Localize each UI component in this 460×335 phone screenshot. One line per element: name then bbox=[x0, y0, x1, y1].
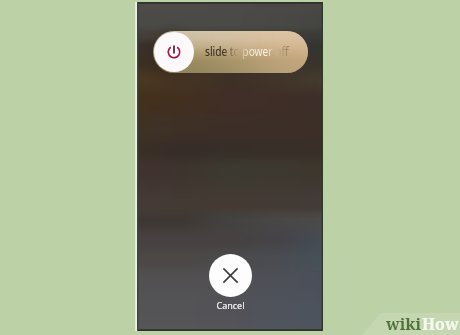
staticText: slide to power off bbox=[205, 42, 289, 60]
staticText: Cancel bbox=[216, 299, 245, 311]
staticText: How bbox=[422, 313, 459, 335]
button[interactable]: Cancel bbox=[195, 254, 265, 311]
button[interactable]: Power bbox=[154, 32, 194, 72]
button[interactable]: slide to power off bbox=[153, 31, 308, 73]
staticText: wiki bbox=[386, 313, 422, 335]
